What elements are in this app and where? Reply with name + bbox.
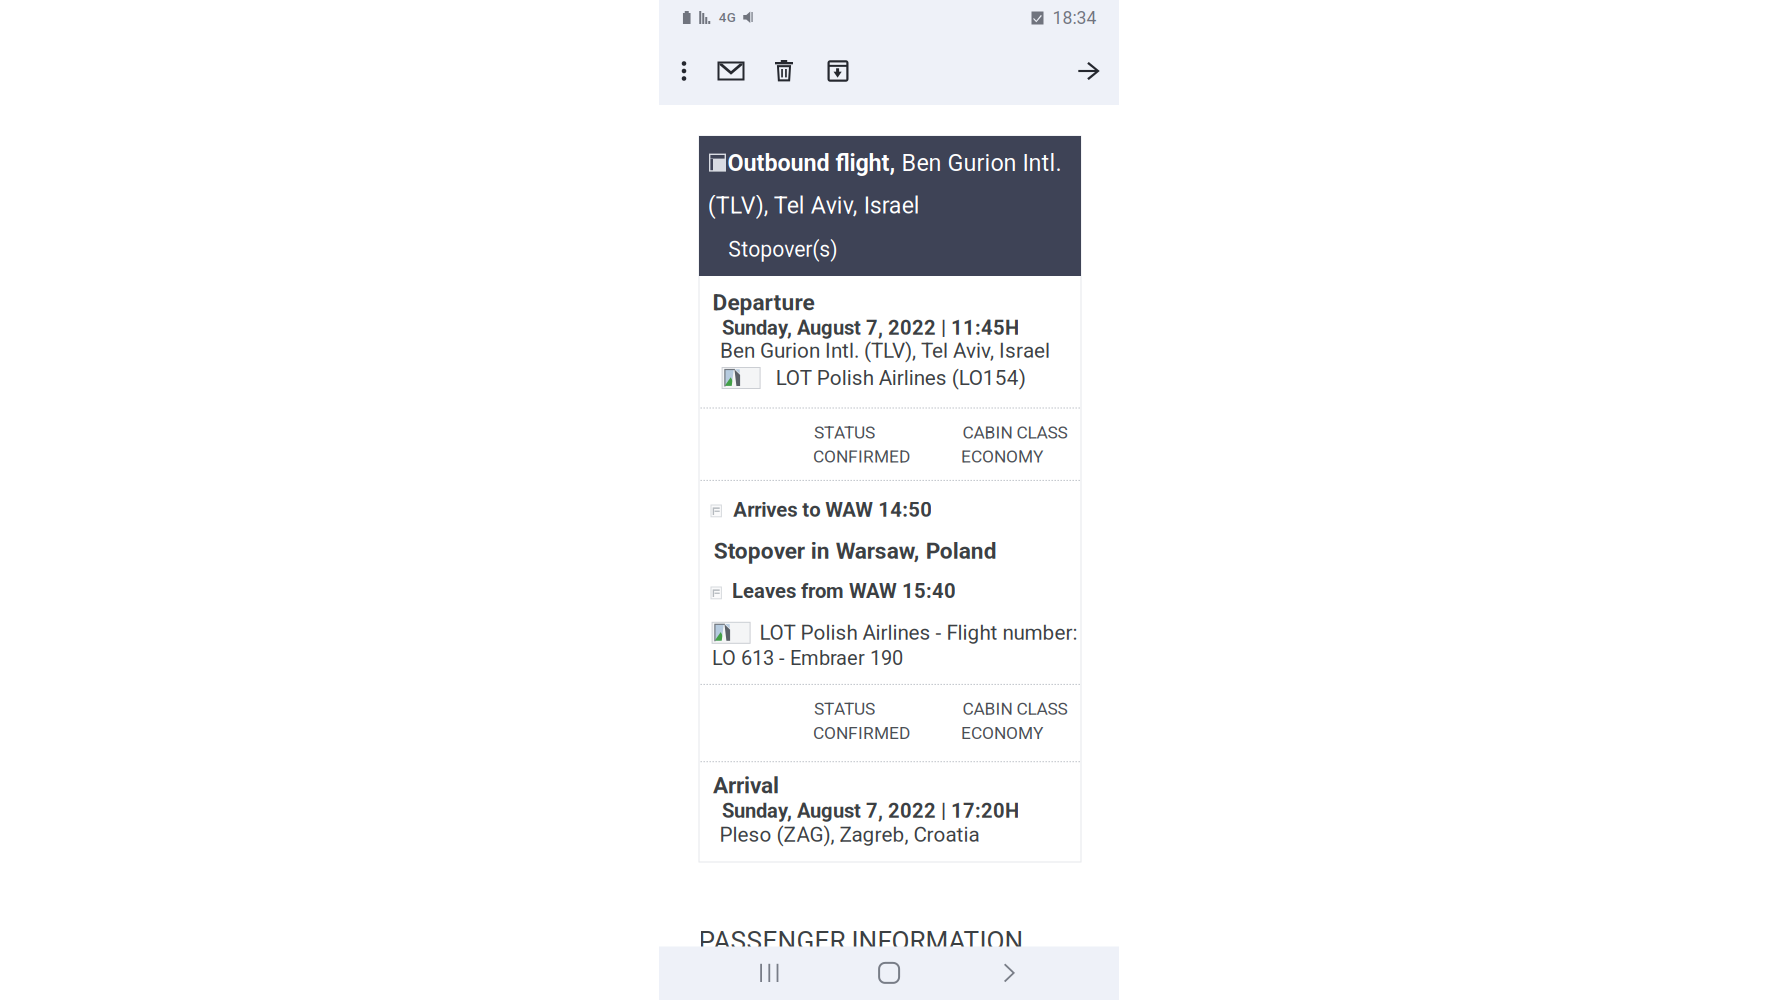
staticText: Sunday, August 7, 2022 | 11:45H	[722, 316, 1019, 340]
staticText: CABIN CLASS	[963, 699, 1068, 719]
staticText: STATUS	[814, 422, 875, 443]
staticText: ECONOMY	[961, 723, 1043, 743]
staticText: Sunday, August 7, 2022 | 17:20H	[722, 799, 1019, 823]
button[interactable]: Next message	[1067, 49, 1111, 93]
staticText: Arrives to WAW 14:50	[733, 498, 932, 522]
staticText: ECONOMY	[961, 446, 1043, 467]
staticText: Stopover(s)	[728, 237, 837, 262]
button[interactable]: More options	[664, 49, 704, 93]
button[interactable]: Delete	[762, 49, 806, 93]
staticText: Ben Gurion Intl.	[895, 149, 1061, 177]
staticText: STATUS	[814, 699, 875, 719]
staticText: Leaves from WAW 15:40	[732, 579, 956, 603]
button[interactable]: Recent apps	[741, 949, 797, 997]
staticText: CONFIRMED	[813, 723, 910, 743]
staticText: Outbound flight,	[727, 149, 895, 177]
staticText: 4G	[719, 10, 736, 25]
staticText: Arrival	[713, 772, 779, 799]
staticText: Ben Gurion Intl. (TLV), Tel Aviv, Israel	[720, 339, 1050, 363]
staticText: LOT Polish Airlines - Flight number:	[759, 621, 1077, 645]
staticText: CONFIRMED	[813, 446, 910, 467]
staticText: LOT Polish Airlines (LO154)	[776, 366, 1026, 390]
button[interactable]: Mark as unread	[709, 49, 753, 93]
staticText: 18:34	[1052, 8, 1096, 28]
button[interactable]: Home	[861, 949, 917, 997]
staticText: LO 613 - Embraer 190	[712, 646, 903, 670]
staticText: CABIN CLASS	[963, 422, 1068, 443]
staticText: PASSENGER INFORMATION	[698, 926, 1023, 956]
button[interactable]: Archive	[816, 49, 860, 93]
button[interactable]: Back	[981, 949, 1037, 997]
staticText: (TLV), Tel Aviv, Israel	[708, 192, 920, 219]
staticText: Pleso (ZAG), Zagreb, Croatia	[719, 823, 979, 847]
staticText: Departure	[712, 289, 814, 316]
staticText: Stopover in Warsaw, Poland	[714, 538, 997, 564]
